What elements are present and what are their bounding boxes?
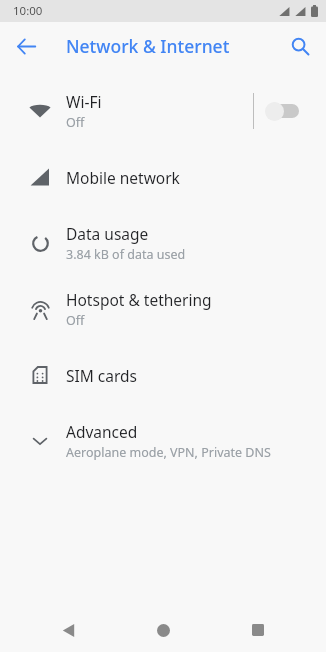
button[interactable]: Home xyxy=(136,608,190,652)
button[interactable]: Back xyxy=(6,26,46,66)
button[interactable]: Wi-Fi xyxy=(0,78,326,144)
staticText: Mobile network xyxy=(66,167,180,188)
button[interactable]: Recent apps xyxy=(231,608,285,652)
button[interactable]: Mobile network xyxy=(0,144,326,210)
button[interactable]: Data usage xyxy=(0,210,326,276)
button[interactable]: Advanced xyxy=(0,408,326,474)
staticText: Aeroplane mode, VPN, Private DNS xyxy=(66,444,271,461)
staticText: 3.84 kB of data used xyxy=(66,246,186,263)
button[interactable]: SIM cards xyxy=(0,342,326,408)
staticText: Hotspot & tethering xyxy=(66,289,212,310)
button[interactable]: Wi-Fi toggle xyxy=(254,93,312,129)
staticText: Data usage xyxy=(66,223,149,244)
staticText: Wi-Fi xyxy=(66,91,102,112)
button[interactable]: Hotspot & tethering xyxy=(0,276,326,342)
staticText: 10:00 xyxy=(13,3,43,19)
button[interactable]: Back xyxy=(41,608,95,652)
staticText: Network & Internet xyxy=(66,34,230,58)
button[interactable]: Search xyxy=(280,26,320,66)
staticText: SIM cards xyxy=(66,365,138,386)
staticText: Advanced xyxy=(66,421,138,442)
staticText: Off xyxy=(66,312,85,329)
staticText: Off xyxy=(66,114,85,131)
